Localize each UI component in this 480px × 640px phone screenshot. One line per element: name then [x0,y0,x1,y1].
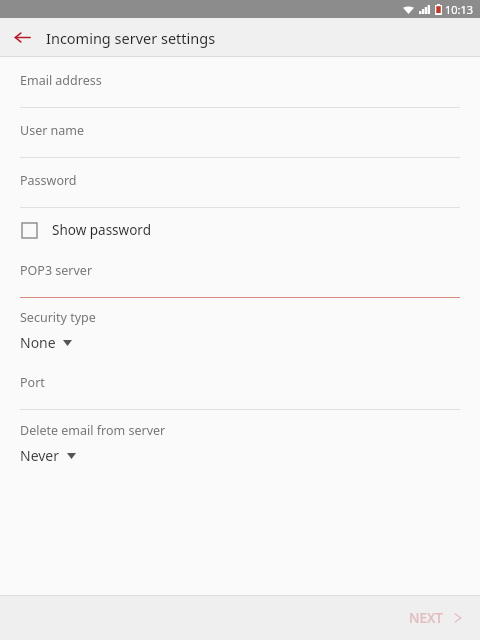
staticText: NEXT [409,609,443,627]
staticText: Incoming server settings [46,28,216,48]
staticText: None [20,333,56,352]
button[interactable]: User name [0,114,480,164]
staticText: Show password [52,221,151,239]
staticText: POP3 server [20,262,93,279]
button[interactable]: POP3 server [0,254,480,304]
staticText: User name [20,122,85,139]
button[interactable]: Email address [0,64,480,114]
button[interactable]: Password [0,164,480,214]
button[interactable]: NEXT [389,596,480,640]
staticText: Security type [20,309,96,326]
staticText: Delete email from server [20,422,166,439]
button[interactable]: Show password [0,214,480,246]
staticText: Port [20,374,45,391]
staticText: 10:13 [445,2,474,17]
button[interactable]: Port [0,366,480,416]
button[interactable]: Delete email from server [0,422,480,473]
staticText: Never [20,446,60,465]
button[interactable]: Back [0,18,44,57]
staticText: Email address [20,72,102,89]
staticText: Password [20,172,77,189]
button[interactable]: Security type [0,309,480,360]
